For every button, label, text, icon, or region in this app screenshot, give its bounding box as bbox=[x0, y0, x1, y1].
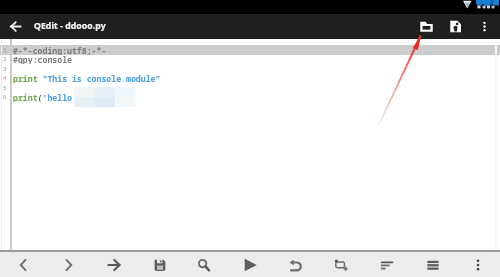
button[interactable]: Outline bbox=[410, 252, 455, 277]
button[interactable]: Back bbox=[3, 14, 28, 39]
button[interactable]: More options bbox=[472, 14, 497, 39]
button[interactable]: Search bbox=[184, 252, 230, 277]
button[interactable]: Add snippet bbox=[320, 252, 365, 277]
staticText: 3 bbox=[3, 65, 7, 73]
button[interactable]: Format bbox=[365, 252, 410, 277]
button[interactable]: Previous bbox=[0, 252, 46, 277]
button[interactable]: Run bbox=[230, 252, 275, 277]
staticText: #qpy:console bbox=[13, 54, 72, 64]
button[interactable]: Undo bbox=[275, 252, 320, 277]
staticText: 5 bbox=[3, 84, 7, 92]
staticText: QEdit - ddooo.py bbox=[34, 20, 106, 32]
staticText: 4 bbox=[3, 74, 7, 82]
button[interactable]: Save file bbox=[443, 14, 468, 39]
button[interactable]: Next bbox=[46, 252, 92, 277]
staticText: #-*-coding:utf8;-*- bbox=[13, 45, 107, 55]
button[interactable]: Save bbox=[138, 252, 184, 277]
staticText: 6 bbox=[3, 93, 7, 101]
staticText: print "This is console module" bbox=[13, 73, 161, 83]
button[interactable]: More options bbox=[455, 252, 500, 277]
button[interactable]: Open folder bbox=[414, 14, 439, 39]
staticText: 1 bbox=[3, 46, 7, 54]
staticText: 2 bbox=[3, 55, 7, 63]
staticText: print('hello bbox=[13, 92, 72, 102]
button[interactable]: Indent bbox=[92, 252, 138, 277]
